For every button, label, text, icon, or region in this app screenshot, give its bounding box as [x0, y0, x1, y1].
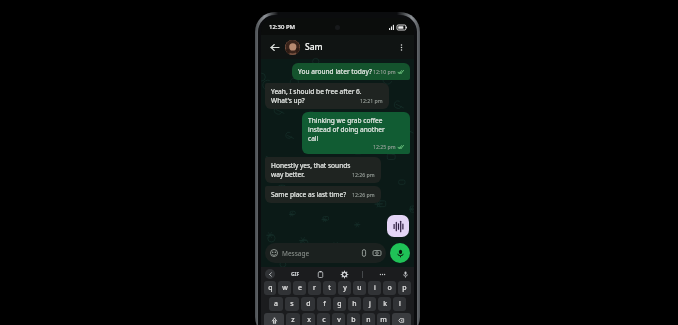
button[interactable]: g — [333, 297, 346, 311]
button[interactable]: Yeah, I should be free after 6. — [265, 83, 389, 109]
staticText: Message — [282, 249, 360, 258]
staticText: call — [308, 134, 319, 143]
staticText: Sam — [305, 41, 323, 53]
button[interactable]: i — [368, 281, 381, 295]
staticText: b — [351, 315, 356, 325]
staticText: z — [291, 315, 295, 325]
staticText: 12:25 pm — [373, 143, 396, 150]
button[interactable]: Settings — [339, 269, 349, 279]
button[interactable]: w — [278, 281, 291, 295]
button[interactable]: u — [353, 281, 366, 295]
button[interactable]: r — [308, 281, 321, 295]
button[interactable]: a — [269, 297, 283, 311]
button[interactable]: f — [317, 297, 331, 311]
button[interactable]: z — [286, 313, 300, 325]
staticText: What's up? — [271, 96, 360, 105]
button[interactable]: x — [302, 313, 315, 325]
button[interactable]: o — [383, 281, 396, 295]
staticText: v — [337, 315, 341, 325]
staticText: y — [343, 283, 347, 293]
button[interactable]: Honestly yes, that sounds — [265, 157, 381, 183]
staticText: Yeah, I should be free after 6. — [271, 87, 362, 96]
staticText: 12:21 pm — [360, 97, 383, 104]
staticText: i — [374, 283, 376, 293]
staticText: GIF — [291, 271, 300, 278]
staticText: o — [387, 283, 392, 293]
button[interactable]: Voice input — [400, 269, 410, 279]
staticText: 12:30 PM — [269, 23, 296, 31]
staticText: s — [290, 299, 294, 309]
button[interactable]: p — [398, 281, 411, 295]
button[interactable]: v — [332, 313, 345, 325]
button[interactable]: Back — [267, 40, 281, 54]
staticText: j — [369, 299, 371, 309]
button[interactable]: h — [348, 297, 361, 311]
staticText: a — [274, 299, 278, 309]
staticText: p — [402, 283, 407, 293]
button[interactable]: Voice waveform — [387, 215, 409, 237]
button[interactable]: m — [377, 313, 390, 325]
staticText: instead of doing another — [308, 125, 385, 134]
button[interactable]: k — [378, 297, 391, 311]
button[interactable]: More — [377, 269, 387, 279]
staticText: Same place as last time? — [271, 190, 352, 199]
button[interactable]: d — [301, 297, 315, 311]
button[interactable]: b — [347, 313, 360, 325]
staticText: h — [352, 299, 357, 309]
staticText: c — [322, 315, 326, 325]
staticText: g — [337, 299, 342, 309]
button[interactable]: Shift — [264, 313, 284, 325]
staticText: d — [306, 299, 311, 309]
button[interactable]: Same place as last time? — [265, 186, 381, 203]
staticText: w — [282, 283, 288, 293]
button[interactable]: s — [285, 297, 299, 311]
button[interactable]: Clipboard — [315, 269, 325, 279]
staticText: You around later today? — [298, 67, 373, 76]
button[interactable]: Expand toolbar — [265, 269, 275, 279]
staticText: 12:26 pm — [352, 191, 375, 198]
staticText: 12:10 pm — [373, 68, 396, 75]
button[interactable]: GIF — [289, 269, 302, 280]
staticText: way better. — [271, 170, 352, 179]
button[interactable]: Profile photo — [285, 40, 300, 55]
staticText: q — [268, 283, 273, 293]
staticText: Thinking we grab coffee — [308, 116, 383, 125]
staticText: m — [380, 315, 387, 325]
button[interactable]: c — [317, 313, 330, 325]
staticText: Honestly yes, that sounds — [271, 161, 351, 170]
staticText: u — [357, 283, 362, 293]
button[interactable]: e — [293, 281, 306, 295]
staticText: e — [298, 283, 302, 293]
button[interactable]: Sam — [305, 41, 394, 53]
staticText: 12:26 pm — [352, 171, 375, 178]
button[interactable]: Thinking we grab coffee — [302, 112, 410, 154]
staticText: x — [307, 315, 311, 325]
button[interactable]: Backspace — [392, 313, 411, 325]
staticText: f — [323, 299, 326, 309]
button[interactable]: More options — [394, 40, 408, 54]
button[interactable]: j — [363, 297, 376, 311]
button[interactable]: l — [393, 297, 406, 311]
staticText: r — [313, 283, 316, 293]
staticText: k — [383, 299, 387, 309]
button[interactable]: q — [264, 281, 276, 295]
staticText: t — [328, 283, 331, 293]
staticText: l — [399, 299, 401, 309]
staticText: n — [366, 315, 371, 325]
button[interactable]: You around later today? — [292, 63, 410, 80]
button[interactable]: Message — [265, 243, 386, 263]
button[interactable]: n — [362, 313, 375, 325]
button[interactable]: t — [323, 281, 336, 295]
button[interactable]: y — [338, 281, 351, 295]
button[interactable]: Record voice message — [390, 243, 410, 263]
